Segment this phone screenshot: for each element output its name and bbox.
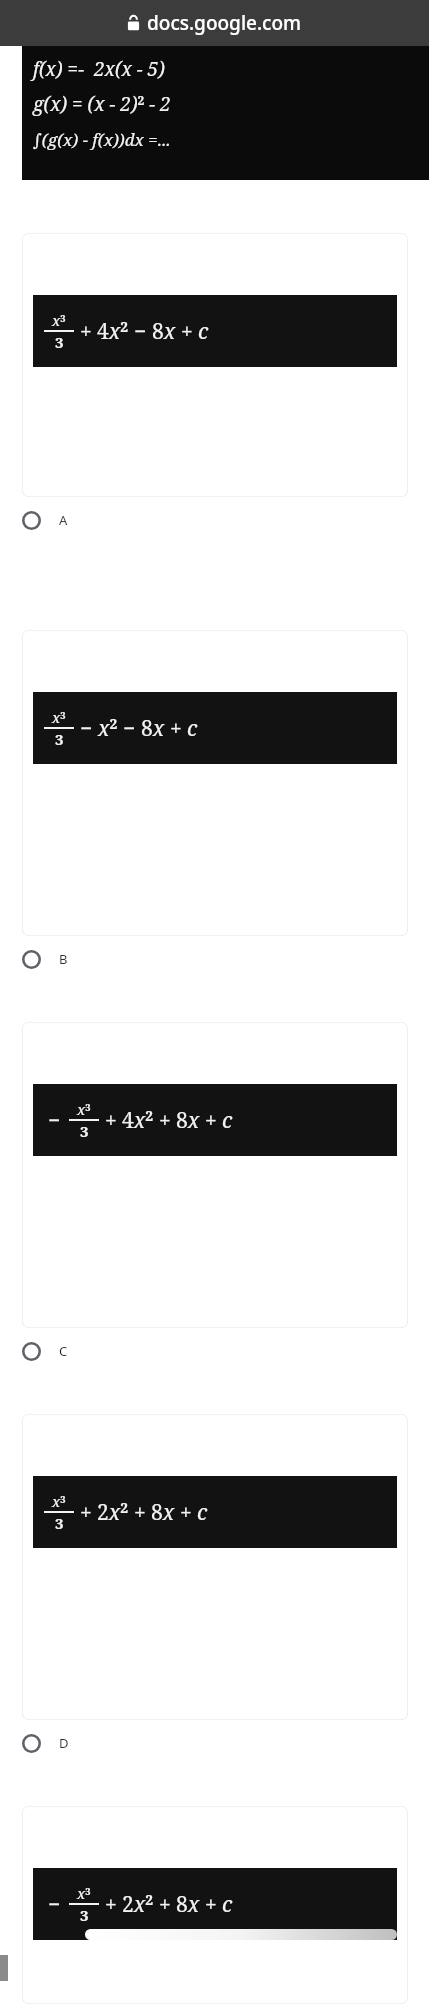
staticText: + [159,1106,171,1135]
staticText: B [59,950,68,968]
staticText: − [134,317,147,346]
staticText: 3 [55,729,64,749]
staticText: D [59,1734,69,1752]
button[interactable]: x3 [22,1414,408,1720]
staticText: x3 [77,1099,91,1119]
staticText: c [222,1890,233,1919]
button[interactable]: − [22,1806,408,2004]
staticText: 3 [55,332,64,352]
staticText: 4x2 [122,1106,154,1135]
button[interactable]: C [22,1328,408,1374]
staticText: 3 [80,1905,89,1925]
staticText: 8x [176,1106,200,1135]
button[interactable]: D [22,1720,408,1766]
button[interactable]: B [22,936,408,982]
staticText: 3 [80,1121,89,1141]
staticText: + [159,1890,171,1919]
staticText: A [59,511,68,529]
button[interactable]: − [22,1022,408,1328]
staticText: + [80,1498,92,1527]
staticText: 3 [55,1513,64,1533]
button[interactable]: x3 [22,630,408,936]
staticText: c [198,317,209,346]
other: Secure connection [127,15,140,31]
staticText: + [180,1498,192,1527]
staticText: + [134,1498,146,1527]
staticText: 8x [151,1498,175,1527]
staticText: − [48,1890,61,1919]
staticText: + [170,714,182,743]
staticText: + [205,1890,217,1919]
staticText: 2x2 [122,1890,154,1919]
button[interactable]: x3 [22,233,408,497]
staticText: ∫(g(x) − f(x))dx =... [33,128,171,151]
staticText: 8x [152,317,176,346]
staticText: x2 [98,714,118,743]
staticText: 8x [176,1890,200,1919]
staticText: 4x2 [97,317,129,346]
staticText: C [59,1342,68,1360]
staticText: x3 [52,310,66,330]
staticText: x3 [77,1883,91,1903]
staticText: c [187,714,198,743]
staticText: c [222,1106,233,1135]
staticText: f(x) =− 2x(x − 5) [33,56,165,82]
staticText: x3 [52,1491,66,1511]
staticText: − [123,714,136,743]
staticText: − [80,714,93,743]
staticText: 2x2 [97,1498,129,1527]
staticText: x3 [52,707,66,727]
staticText: 8x [141,714,165,743]
staticText: docs.google.com [147,10,302,36]
staticText: + [105,1890,117,1919]
staticText: g(x) = (x − 2)2 − 2 [33,91,171,117]
button[interactable]: A [22,497,408,543]
staticText: + [80,317,92,346]
staticText: + [181,317,193,346]
staticText: − [48,1106,61,1135]
staticText: + [105,1106,117,1135]
button[interactable]: Secure connection [0,0,429,46]
staticText: + [205,1106,217,1135]
staticText: c [197,1498,208,1527]
